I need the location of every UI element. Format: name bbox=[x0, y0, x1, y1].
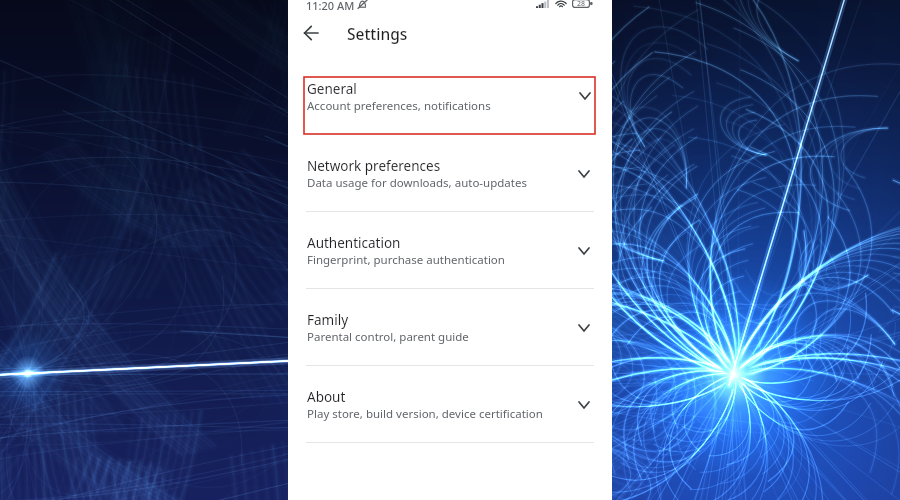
button[interactable]: Authentication bbox=[288, 212, 612, 289]
staticText: Data usage for downloads, auto-updates bbox=[307, 175, 527, 191]
staticText: About bbox=[307, 388, 346, 406]
button[interactable]: Family bbox=[288, 289, 612, 366]
button[interactable]: Network preferences bbox=[288, 135, 612, 212]
staticText: Authentication bbox=[307, 234, 401, 252]
staticText: 11:20 AM bbox=[306, 0, 355, 12]
button[interactable]: About bbox=[288, 366, 612, 443]
staticText: General bbox=[307, 80, 357, 98]
staticText: 28 bbox=[577, 0, 586, 8]
staticText: Account preferences, notifications bbox=[307, 98, 491, 114]
button[interactable]: Back bbox=[296, 18, 326, 48]
button[interactable]: General bbox=[304, 77, 595, 134]
staticText: Fingerprint, purchase authentication bbox=[307, 252, 505, 268]
staticText: Family bbox=[307, 311, 349, 329]
staticText: Parental control, parent guide bbox=[307, 329, 469, 345]
staticText: Network preferences bbox=[307, 157, 441, 175]
staticText: Play store, build version, device certif… bbox=[307, 406, 543, 422]
staticText: Settings bbox=[347, 23, 408, 44]
